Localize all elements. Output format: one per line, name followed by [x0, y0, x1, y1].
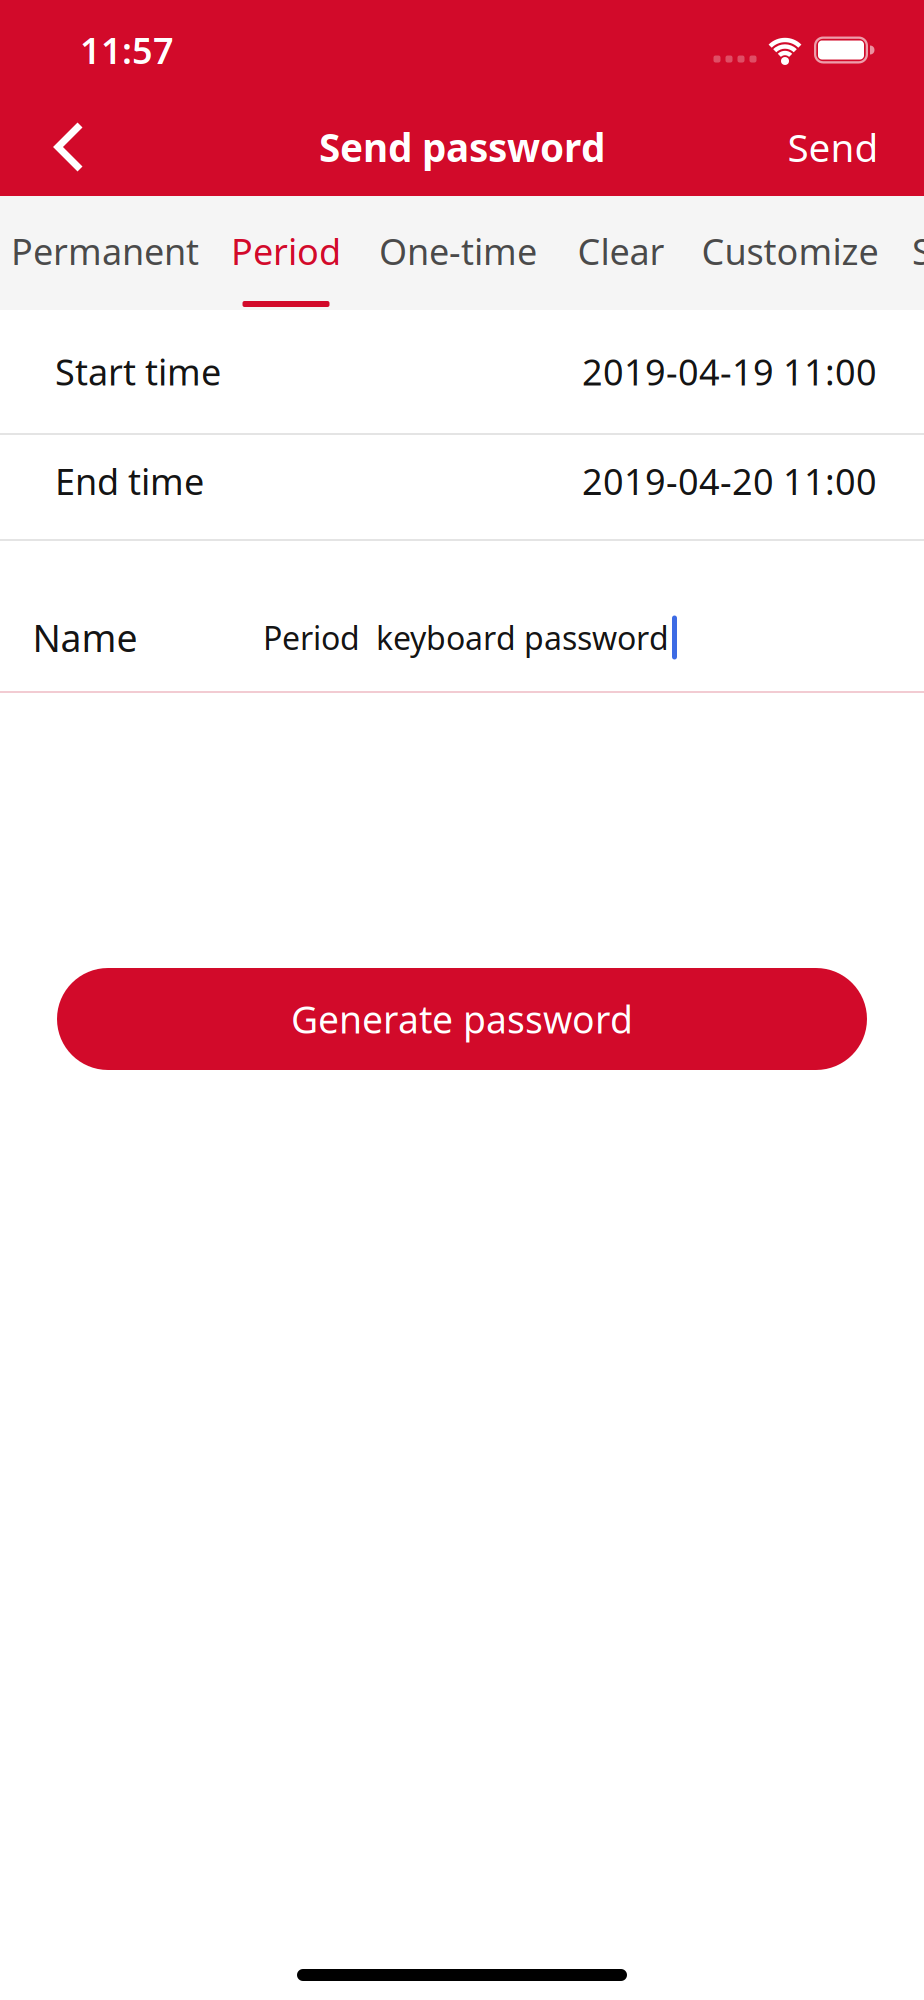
staticText: Share: [912, 227, 924, 275]
staticText: One-time: [379, 227, 537, 275]
button[interactable]: Customize: [701, 227, 878, 275]
staticText: Send password: [319, 121, 605, 173]
staticText: Permanent: [11, 227, 199, 275]
staticText: Send: [787, 121, 878, 173]
button[interactable]: Send: [787, 121, 878, 173]
staticText: Generate password: [291, 994, 633, 1044]
staticText: Period keyboard password: [263, 616, 669, 659]
button[interactable]: Permanent: [11, 227, 199, 275]
staticText: Period: [231, 227, 341, 275]
staticText: Clear: [577, 227, 664, 275]
button[interactable]: Start time: [0, 310, 924, 433]
button[interactable]: Generate password: [57, 968, 867, 1070]
staticText: Customize: [701, 227, 878, 275]
button[interactable]: Name: [0, 590, 924, 691]
button[interactable]: Share: [912, 227, 924, 275]
button[interactable]: Period: [231, 227, 341, 275]
button[interactable]: End time: [0, 435, 924, 539]
staticText: Start time: [55, 348, 221, 395]
button[interactable]: Back: [36, 112, 96, 182]
staticText: End time: [55, 457, 204, 505]
button[interactable]: One-time: [379, 227, 537, 275]
staticText: 11:57: [80, 26, 174, 74]
staticText: 2019-04-19 11:00: [582, 348, 877, 395]
staticText: Name: [32, 613, 137, 662]
staticText: 2019-04-20 11:00: [582, 457, 877, 505]
button[interactable]: Clear: [577, 227, 664, 275]
